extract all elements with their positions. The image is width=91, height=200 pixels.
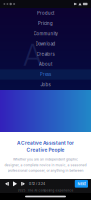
button[interactable]: Jobs xyxy=(0,80,91,90)
button[interactable]: About xyxy=(0,59,91,69)
staticText: 2025 The AI composing experience xyxy=(17,189,73,192)
button[interactable]: Community xyxy=(0,29,91,39)
staticText: Pricing xyxy=(38,21,53,26)
staticText: Product xyxy=(37,11,54,16)
button[interactable]: Next xyxy=(75,180,88,188)
button[interactable]: Product xyxy=(0,8,91,18)
staticText: professional composer, or anything in be… xyxy=(7,169,83,173)
staticText: Community xyxy=(33,31,57,36)
button[interactable]: Creators xyxy=(0,49,91,59)
button[interactable]: Play xyxy=(11,179,19,188)
button[interactable]: Download xyxy=(0,39,91,49)
staticText: Whether you are an independent graphic xyxy=(13,157,78,161)
button[interactable]: Press xyxy=(0,69,91,80)
staticText: A xyxy=(23,37,42,73)
staticText: Next xyxy=(77,181,85,186)
staticText: A Creative Assistant for xyxy=(17,140,74,146)
staticText: 0:12 / 3:24 xyxy=(29,182,45,186)
staticText: Creators xyxy=(36,51,54,57)
staticText: designer, a complete novice in music, a … xyxy=(4,163,86,167)
staticText: Press xyxy=(40,72,51,77)
button[interactable]: Previous xyxy=(3,179,11,188)
staticText: Download xyxy=(35,41,55,46)
button[interactable]: Pricing xyxy=(0,18,91,29)
staticText: Jobs xyxy=(40,82,50,87)
staticText: Creative People xyxy=(26,147,64,153)
staticText: About xyxy=(39,62,52,67)
button[interactable]: Next xyxy=(19,179,27,188)
